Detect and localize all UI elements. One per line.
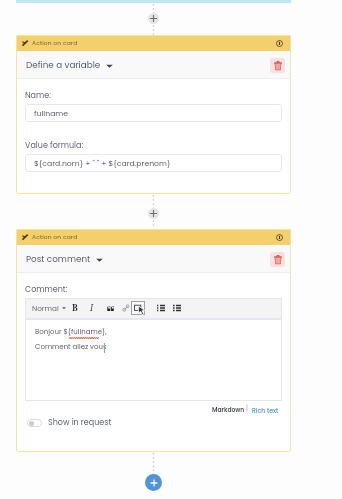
button[interactable]: Insert image	[131, 301, 145, 315]
button[interactable]: Bonjour ${fullname},	[25, 319, 282, 401]
staticText: Value formula:	[25, 140, 84, 151]
button[interactable]: Add action	[145, 474, 162, 491]
button[interactable]: Info	[274, 38, 284, 48]
button[interactable]: Bulleted list	[154, 301, 168, 315]
staticText: fullname	[34, 108, 69, 119]
button[interactable]: Bold	[68, 301, 82, 315]
staticText: Action on card	[32, 39, 78, 47]
button[interactable]: Rich text	[250, 404, 281, 417]
staticText: Post comment	[26, 253, 91, 265]
staticText: |	[246, 403, 248, 412]
staticText: Normal	[32, 303, 59, 313]
button[interactable]: Italic	[85, 301, 99, 315]
staticText: Show in request	[48, 417, 112, 428]
button[interactable]: Show in request	[25, 415, 114, 430]
staticText: Comment allez vous	[35, 342, 107, 352]
button[interactable]: Post comment	[26, 250, 103, 268]
staticText: Comment:	[25, 284, 68, 295]
staticText: Name:	[25, 90, 51, 101]
button[interactable]: ${card.nom} + " " + ${card.prenom}	[25, 154, 282, 172]
button[interactable]: Numbered list	[170, 301, 184, 315]
button[interactable]: fullname	[25, 104, 282, 122]
staticText: B	[72, 302, 78, 314]
button[interactable]: Insert action	[148, 208, 159, 219]
button[interactable]: Quote	[103, 301, 117, 315]
button[interactable]: Markdown	[210, 404, 247, 416]
button[interactable]: Normal	[30, 302, 68, 314]
staticText: Action on card	[32, 233, 78, 241]
staticText: Rich text	[252, 406, 279, 415]
button[interactable]: Info	[274, 232, 284, 242]
staticText: ${card.nom} + " " + ${card.prenom}	[34, 158, 171, 169]
button[interactable]: Insert action	[148, 13, 159, 24]
button[interactable]: Delete action	[270, 252, 285, 267]
button[interactable]: Delete action	[270, 58, 285, 73]
staticText: Define a variable	[26, 59, 101, 71]
staticText: Bonjour ${fullname},	[35, 327, 107, 337]
staticText: Markdown	[212, 406, 245, 414]
button[interactable]: Link	[119, 301, 133, 315]
staticText: I	[90, 302, 94, 314]
button[interactable]: Define a variable	[26, 56, 113, 74]
